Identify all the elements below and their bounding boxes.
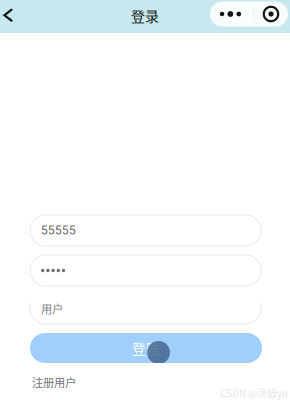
staticText: 55555 xyxy=(41,224,76,237)
staticText: 用户 xyxy=(41,300,63,317)
staticText: 注册用户 xyxy=(32,374,76,390)
button[interactable]: More options xyxy=(210,2,290,26)
button[interactable]: 登陆 xyxy=(30,333,262,363)
staticText: CSDN @汤姆yu xyxy=(220,386,288,400)
staticText: 登陆 xyxy=(132,338,160,358)
button[interactable]: 注册用户 xyxy=(32,375,84,389)
button[interactable]: Back xyxy=(0,0,28,31)
staticText: 登录 xyxy=(131,5,159,26)
